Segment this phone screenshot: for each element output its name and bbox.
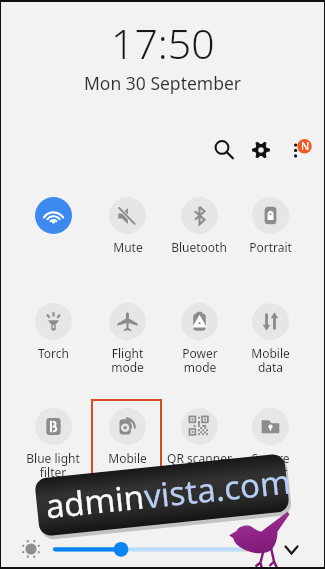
staticText: Mobile — [108, 450, 147, 466]
staticText: N — [301, 139, 310, 153]
staticText: Mute — [113, 239, 143, 255]
staticText: Torch — [38, 345, 69, 361]
button[interactable]: Mobile data — [234, 303, 306, 381]
staticText: Mon 30 September — [84, 71, 242, 95]
staticText: Blue light filter — [26, 450, 80, 481]
button[interactable]: Flight mode — [91, 303, 163, 381]
staticText: Flight mode — [111, 345, 144, 376]
button[interactable]: Portrait — [234, 197, 306, 275]
button[interactable]: Mobile — [91, 408, 163, 486]
staticText: vista.com — [142, 458, 294, 518]
button[interactable] — [17, 197, 89, 275]
staticText: Portrait — [249, 239, 292, 255]
button[interactable]: Secure folder — [234, 408, 306, 486]
button[interactable]: Power mode — [163, 303, 235, 381]
button[interactable]: QR scanner — [163, 408, 235, 486]
button[interactable]: More options — [288, 134, 318, 164]
staticText: 17:50 — [111, 15, 215, 71]
staticText: Bluetooth — [171, 239, 227, 255]
button[interactable]: Torch — [17, 303, 89, 381]
staticText: Secure folder — [251, 450, 290, 481]
staticText: Power mode — [182, 345, 218, 376]
button[interactable]: Mute — [91, 197, 163, 275]
staticText: QR scanner — [167, 450, 232, 466]
staticText: Mobile data — [251, 345, 290, 376]
button[interactable]: Settings — [247, 136, 275, 164]
staticText: admin — [43, 474, 146, 528]
button[interactable]: Blue light filter — [17, 408, 89, 486]
button[interactable]: Search — [210, 135, 238, 163]
button[interactable]: Bluetooth — [163, 197, 235, 275]
button[interactable]: Expand — [278, 537, 304, 563]
